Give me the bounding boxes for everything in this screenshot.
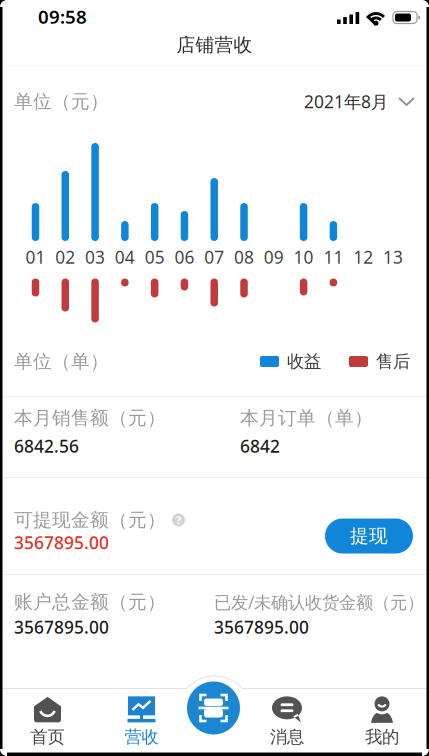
staticText: 可提现金额（元）	[14, 508, 166, 531]
staticText: 已发/未确认收货金额（元）	[214, 590, 424, 613]
staticText: 售后	[376, 351, 410, 372]
staticText: ?	[176, 513, 181, 527]
staticText: 09:58	[38, 4, 87, 29]
staticText: 13	[383, 245, 403, 268]
staticText: 本月销售额（元）	[14, 406, 166, 429]
button[interactable]: 营收	[109, 697, 173, 747]
staticText: 05	[145, 245, 165, 268]
staticText: 09	[264, 245, 284, 268]
staticText: 6842.56	[14, 434, 79, 457]
staticText: 06	[174, 245, 194, 268]
button[interactable]: 消息	[255, 697, 319, 747]
button[interactable]: 2021年8月	[304, 90, 415, 113]
staticText: 10	[294, 245, 314, 268]
staticText: 11	[323, 245, 343, 268]
staticText: 营收	[124, 726, 158, 748]
button[interactable]: 提现	[325, 518, 413, 553]
staticText: 我的	[365, 726, 399, 748]
staticText: 首页	[30, 726, 64, 748]
staticText: 账户总金额（元）	[14, 590, 166, 613]
staticText: 12	[353, 245, 373, 268]
staticText: 07	[204, 245, 224, 268]
staticText: 3567895.00	[214, 615, 309, 638]
staticText: 03	[85, 245, 105, 268]
staticText: 08	[234, 245, 254, 268]
button[interactable]: 首页	[15, 697, 79, 747]
staticText: 3567895.00	[14, 531, 109, 554]
staticText: 店铺营收	[176, 33, 252, 56]
staticText: 04	[115, 245, 135, 268]
staticText: 单位（元）	[14, 90, 109, 113]
staticText: 单位（单）	[14, 350, 109, 373]
staticText: 01	[25, 245, 45, 268]
staticText: 本月订单（单）	[240, 406, 373, 429]
button[interactable]	[187, 681, 240, 734]
staticText: 02	[55, 245, 75, 268]
button[interactable]: 我的	[350, 697, 414, 747]
staticText: 提现	[350, 524, 388, 547]
staticText: 3567895.00	[14, 615, 109, 638]
staticText: 6842	[240, 434, 280, 457]
staticText: 收益	[287, 351, 321, 372]
staticText: 2021年8月	[304, 90, 388, 113]
staticText: 消息	[270, 726, 304, 748]
